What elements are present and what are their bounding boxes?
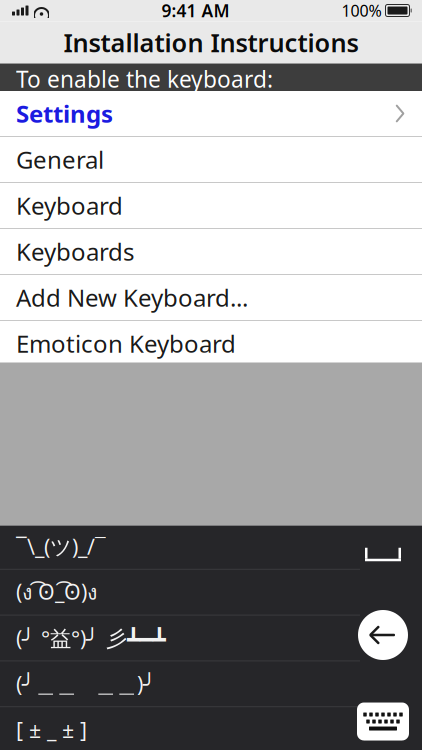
button[interactable]: General xyxy=(0,137,422,182)
staticText: (╯＿＿ ＿＿)╯ xyxy=(16,670,156,698)
button[interactable]: Delete xyxy=(358,610,408,660)
staticText: To enable the keyboard: xyxy=(16,64,273,94)
staticText: [ ± _ ± ] xyxy=(16,715,87,744)
button[interactable]: (╯＿＿ ＿＿)╯ xyxy=(0,661,360,706)
button[interactable]: Add New Keyboard... xyxy=(0,275,422,320)
staticText: Add New Keyboard... xyxy=(16,282,248,313)
button[interactable]: Keyboards xyxy=(0,229,422,274)
staticText: 100% xyxy=(341,0,381,21)
staticText: Settings xyxy=(16,98,113,129)
button[interactable]: Keyboard xyxy=(0,183,422,228)
staticText: Keyboard xyxy=(16,190,123,221)
staticText: (ง ͡ʘ_͡ʘ)ง xyxy=(16,576,97,609)
staticText: (╯ °益°)╯ 彡┻━┻ xyxy=(16,624,166,652)
staticText: 9:41 AM xyxy=(161,0,229,22)
button[interactable]: Space xyxy=(358,541,408,567)
staticText: Keyboards xyxy=(16,236,134,267)
staticText: General xyxy=(16,144,104,175)
button[interactable]: (ง ͡ʘ_͡ʘ)ง xyxy=(0,570,360,615)
button[interactable]: Settings xyxy=(0,91,422,136)
button[interactable]: (╯ °益°)╯ 彡┻━┻ xyxy=(0,616,360,660)
button[interactable]: Emoticon Keyboard xyxy=(0,321,422,366)
button[interactable]: Dismiss Keyboard xyxy=(357,702,409,740)
staticText: ¯\_(ツ)_/¯ xyxy=(16,532,106,560)
staticText: Installation Instructions xyxy=(63,26,358,59)
button[interactable]: ¯\_(ツ)_/¯ xyxy=(0,524,360,569)
staticText: Emoticon Keyboard xyxy=(16,328,236,359)
button[interactable]: [ ± _ ± ] xyxy=(0,707,360,750)
